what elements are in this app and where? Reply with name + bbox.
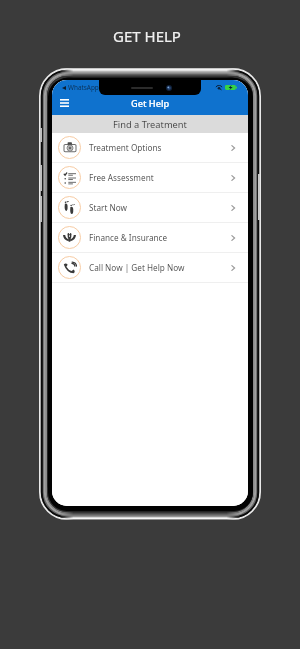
button[interactable]: Treatment Options bbox=[52, 133, 248, 162]
button[interactable]: Open navigation menu bbox=[55, 94, 73, 112]
staticText: GET HELP bbox=[0, 26, 297, 46]
staticText: Free Assessment bbox=[89, 172, 154, 183]
button[interactable]: Start Now bbox=[52, 193, 248, 222]
staticText: Treatment Options bbox=[89, 142, 162, 153]
button[interactable]: Call Now | Get Help Now bbox=[52, 253, 248, 282]
button[interactable]: Free Assessment bbox=[52, 163, 248, 192]
staticText: WhatsApp bbox=[68, 83, 99, 92]
staticText: Find a Treatment bbox=[113, 118, 187, 131]
staticText: Start Now bbox=[89, 202, 127, 213]
staticText: Get Help bbox=[131, 97, 170, 110]
staticText: Finance & Insurance bbox=[89, 232, 168, 243]
staticText: Call Now | Get Help Now bbox=[89, 262, 185, 273]
button[interactable]: Finance & Insurance bbox=[52, 223, 248, 252]
